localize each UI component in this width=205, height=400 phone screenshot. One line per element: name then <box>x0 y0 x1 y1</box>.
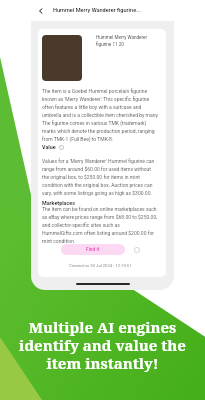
staticText: Values for a 'Merry Wanderer' Hummel fig… <box>42 158 159 196</box>
staticText: Value <box>42 144 56 150</box>
button[interactable]: Find it <box>61 244 125 255</box>
staticText: Created on 30 Jul 2024 - 12:10:51 <box>69 263 132 268</box>
button[interactable]: Info <box>133 246 141 254</box>
staticText: Find it <box>86 247 100 253</box>
staticText: The item is a Goebel Hummel porcelain fi… <box>42 88 159 142</box>
button[interactable]: Back <box>35 5 47 17</box>
staticText: Hummel Merry Wanderer figurine 11 20 <box>96 35 159 47</box>
staticText: Hummel Merry Wanderer figurine... <box>53 7 141 14</box>
staticText: Marketplaces <box>42 200 75 206</box>
staticText: The item can be found on online marketpl… <box>42 206 159 244</box>
staticText: Multiple AI engines identify and value t… <box>8 317 197 374</box>
